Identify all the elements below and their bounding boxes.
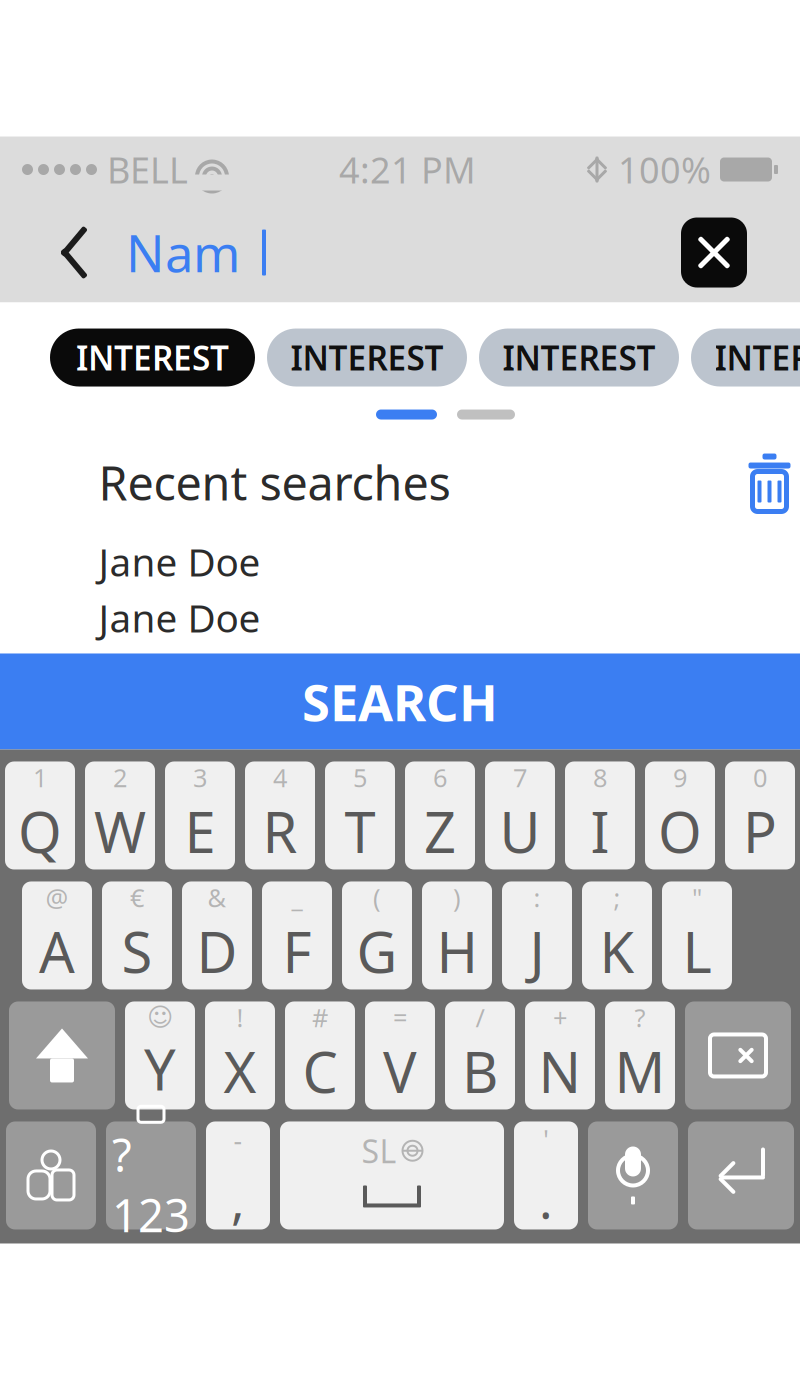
staticText: O bbox=[658, 794, 702, 868]
button[interactable]: Back bbox=[42, 215, 106, 289]
staticText: @ bbox=[45, 880, 68, 914]
button[interactable]: ( bbox=[342, 881, 412, 989]
button[interactable]: Space bbox=[280, 1121, 504, 1229]
staticText: ☺ bbox=[147, 1003, 173, 1032]
button[interactable]: INTEREST bbox=[691, 328, 800, 386]
button[interactable]: _ bbox=[262, 881, 332, 989]
button[interactable]: INTEREST bbox=[50, 328, 255, 386]
staticText: & bbox=[207, 880, 226, 914]
staticText: ; bbox=[613, 880, 620, 914]
button[interactable]: = bbox=[365, 1001, 435, 1109]
button[interactable]: Jane Doe bbox=[45, 533, 800, 589]
button[interactable]: 7 bbox=[485, 761, 555, 869]
staticText: BELL bbox=[107, 146, 188, 193]
button[interactable]: & bbox=[182, 881, 252, 989]
staticText: 2 bbox=[113, 760, 127, 794]
staticText: S bbox=[121, 914, 152, 988]
button[interactable]: € bbox=[102, 881, 172, 989]
staticText: V bbox=[383, 1034, 417, 1108]
staticText: K bbox=[599, 914, 634, 988]
button[interactable]: + bbox=[525, 1001, 595, 1109]
button[interactable]: ; bbox=[582, 881, 652, 989]
button[interactable]: 5 bbox=[325, 761, 395, 869]
staticText: Recent searches bbox=[98, 451, 450, 513]
staticText: ' bbox=[543, 1122, 549, 1157]
button[interactable]: INTEREST bbox=[479, 328, 679, 386]
staticText: W bbox=[94, 794, 146, 868]
button[interactable]: 0 bbox=[725, 761, 795, 869]
staticText: ! bbox=[236, 1000, 243, 1034]
button[interactable]: Close bbox=[681, 217, 747, 287]
staticText: + bbox=[553, 1000, 567, 1034]
button[interactable]: Clear recent searches bbox=[746, 453, 792, 511]
staticText: L bbox=[682, 914, 711, 988]
staticText: Y bbox=[144, 1032, 176, 1106]
staticText: 8 bbox=[593, 760, 607, 794]
staticText: B bbox=[462, 1034, 498, 1108]
staticText: 100% bbox=[618, 146, 711, 193]
staticText: 4:21 PM bbox=[339, 146, 476, 193]
staticText: 4 bbox=[273, 760, 287, 794]
staticText: R bbox=[262, 794, 297, 868]
staticText: Jane Doe bbox=[98, 592, 260, 643]
button[interactable]: 2 bbox=[85, 761, 155, 869]
staticText: G bbox=[356, 914, 397, 988]
button[interactable]: - bbox=[206, 1121, 270, 1229]
button[interactable]: # bbox=[285, 1001, 355, 1109]
staticText: SL bbox=[361, 1129, 396, 1172]
staticText: ?123 bbox=[112, 1124, 190, 1245]
button[interactable]: ) bbox=[422, 881, 492, 989]
staticText: 6 bbox=[433, 760, 447, 794]
button[interactable]: Backspace bbox=[685, 1001, 791, 1109]
staticText: 1 bbox=[33, 760, 47, 794]
staticText: _ bbox=[291, 880, 302, 914]
staticText: Jane Doe bbox=[98, 536, 260, 587]
staticText: T bbox=[344, 794, 375, 868]
button[interactable]: 9 bbox=[645, 761, 715, 869]
staticText: 9 bbox=[673, 760, 687, 794]
staticText: / bbox=[475, 1000, 484, 1034]
staticText: H bbox=[436, 914, 477, 988]
button[interactable]: 3 bbox=[165, 761, 235, 869]
staticText: 7 bbox=[513, 760, 527, 794]
button[interactable]: : bbox=[502, 881, 572, 989]
staticText: ( bbox=[373, 880, 381, 914]
staticText: D bbox=[196, 914, 237, 988]
button[interactable]: @ bbox=[22, 881, 92, 989]
staticText: Q bbox=[18, 794, 62, 868]
button[interactable]: ' bbox=[514, 1121, 578, 1229]
staticText: ) bbox=[453, 880, 461, 914]
staticText: Z bbox=[424, 794, 456, 868]
staticText: INTEREST bbox=[502, 335, 655, 380]
staticText: INTEREST bbox=[714, 335, 800, 380]
staticText: P bbox=[743, 794, 777, 868]
staticText: = bbox=[393, 1000, 407, 1034]
button[interactable]: INTEREST bbox=[267, 328, 467, 386]
staticText: . bbox=[539, 1166, 553, 1233]
button[interactable]: 1 bbox=[5, 761, 75, 869]
staticText: # bbox=[312, 1000, 328, 1034]
staticText: : bbox=[533, 880, 540, 914]
button[interactable]: ! bbox=[205, 1001, 275, 1109]
staticText: E bbox=[184, 794, 215, 868]
button[interactable]: Numbers and symbols bbox=[106, 1121, 196, 1229]
staticText: INTEREST bbox=[290, 335, 443, 380]
button[interactable]: Jane Doe bbox=[45, 589, 800, 645]
button[interactable]: 6 bbox=[405, 761, 475, 869]
button[interactable]: / bbox=[445, 1001, 515, 1109]
staticText: 3 bbox=[193, 760, 207, 794]
button[interactable]: ☺ bbox=[125, 1001, 195, 1109]
staticText: J bbox=[529, 914, 544, 988]
button[interactable]: " bbox=[662, 881, 732, 989]
staticText: , bbox=[231, 1166, 245, 1233]
button[interactable]: SEARCH bbox=[0, 653, 800, 749]
staticText: " bbox=[692, 880, 702, 914]
button[interactable]: Keyboard settings bbox=[6, 1121, 96, 1229]
button[interactable]: Return bbox=[688, 1121, 794, 1229]
button[interactable]: Shift bbox=[9, 1001, 115, 1109]
staticText: C bbox=[302, 1034, 337, 1108]
button[interactable]: 8 bbox=[565, 761, 635, 869]
button[interactable]: 4 bbox=[245, 761, 315, 869]
button[interactable]: Dictation bbox=[588, 1121, 678, 1229]
button[interactable]: ? bbox=[605, 1001, 675, 1109]
